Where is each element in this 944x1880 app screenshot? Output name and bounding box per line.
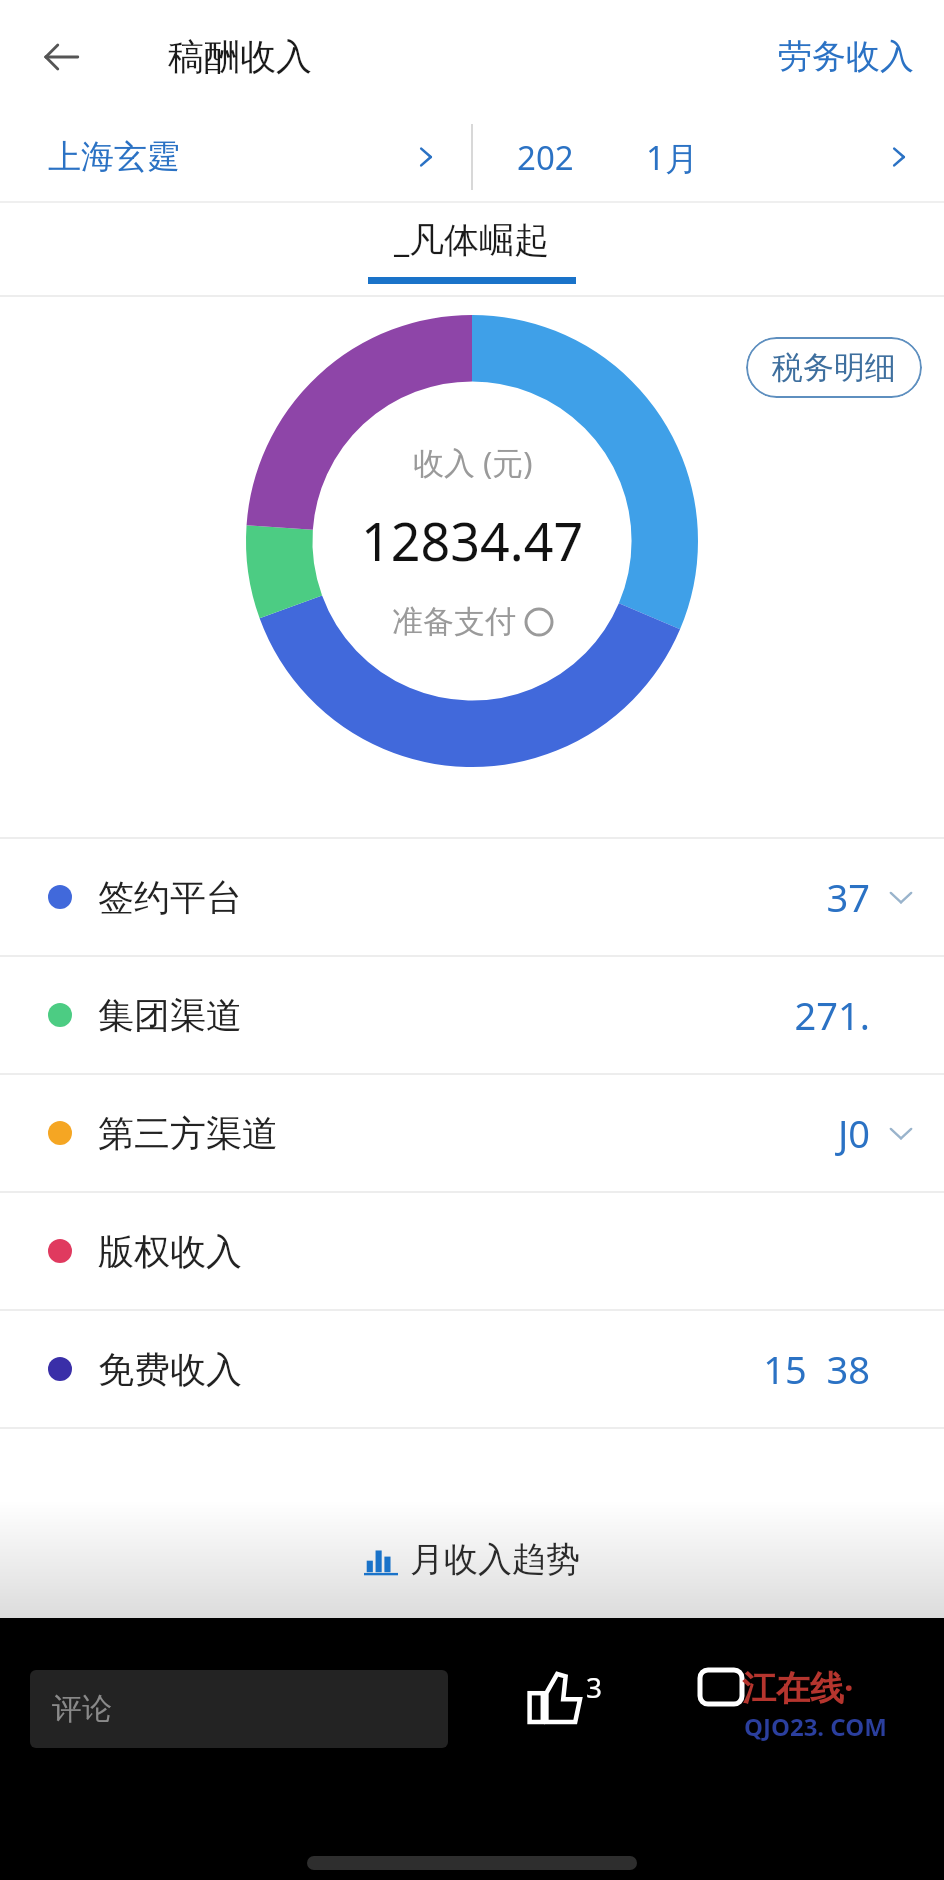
staticText: 江在线·: [742, 1664, 854, 1710]
staticText: 12834.47: [361, 505, 584, 576]
staticText: 签约平台: [98, 875, 242, 920]
staticText: 稿酬收入: [168, 34, 312, 79]
staticText: J0: [837, 1107, 870, 1159]
button[interactable]: 评论: [30, 1670, 448, 1748]
staticText: 税务明细: [772, 348, 896, 387]
staticText: 第三方渠道: [98, 1111, 278, 1156]
staticText: 3: [586, 1668, 603, 1706]
staticText: 202: [517, 135, 574, 180]
staticText: 月收入趋势: [410, 1538, 580, 1581]
staticText: 上海玄霆: [48, 136, 180, 178]
staticText: 版权收入: [98, 1229, 242, 1274]
staticText: 评论: [52, 1690, 112, 1728]
staticText: 准备支付: [392, 602, 516, 641]
staticText: 271.: [794, 989, 870, 1041]
staticText: 劳务收入: [778, 35, 914, 78]
button[interactable]: 第三方渠道: [0, 1075, 944, 1191]
button[interactable]: 劳务收入: [766, 25, 926, 88]
button[interactable]: 版权收入: [0, 1193, 944, 1309]
staticText: 集团渠道: [98, 993, 242, 1038]
button[interactable]: 月收入趋势: [0, 1500, 944, 1618]
button[interactable]: 免费收入: [0, 1311, 944, 1427]
staticText: 收入 (元): [413, 441, 533, 483]
staticText: QJO23. COM: [744, 1710, 887, 1743]
button[interactable]: 202: [473, 113, 944, 201]
button[interactable]: Like: [520, 1662, 609, 1734]
staticText: 37: [826, 871, 870, 923]
staticText: 1月: [646, 135, 698, 180]
staticText: _凡体崛起: [394, 215, 550, 263]
button[interactable]: 集团渠道: [0, 957, 944, 1073]
button[interactable]: Back: [30, 26, 92, 88]
staticText: 15 38: [763, 1343, 870, 1395]
staticText: 免费收入: [98, 1347, 242, 1392]
button[interactable]: 上海玄霆: [0, 113, 471, 201]
button[interactable]: 税务明细: [746, 337, 922, 398]
button[interactable]: _凡体崛起: [368, 215, 576, 284]
button[interactable]: 签约平台: [0, 839, 944, 955]
